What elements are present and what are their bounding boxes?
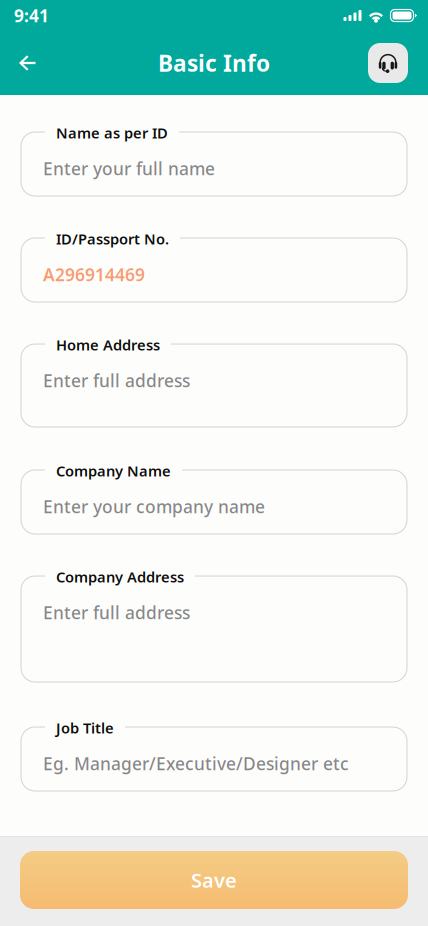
staticText: Enter full address [43, 369, 190, 392]
staticText: Company Name [56, 461, 171, 480]
staticText: Enter full address [43, 601, 190, 624]
staticText: Enter your full name [43, 157, 215, 180]
staticText: Basic Info [158, 48, 270, 78]
staticText: Eg. Manager/Executive/Designer etc [43, 752, 349, 775]
staticText: Company Address [56, 567, 184, 586]
staticText: ID/Passport No. [56, 229, 169, 248]
staticText: Name as per ID [56, 123, 168, 142]
staticText: Home Address [56, 335, 160, 354]
button[interactable]: Save [20, 851, 408, 909]
staticText: Save [191, 867, 237, 893]
staticText: Job Title [56, 718, 114, 737]
staticText: Enter your company name [43, 495, 265, 518]
staticText: 9:41 [14, 4, 49, 27]
button[interactable]: Customer support [368, 43, 408, 83]
button[interactable]: Back [0, 37, 55, 89]
staticText: A296914469 [43, 263, 145, 286]
